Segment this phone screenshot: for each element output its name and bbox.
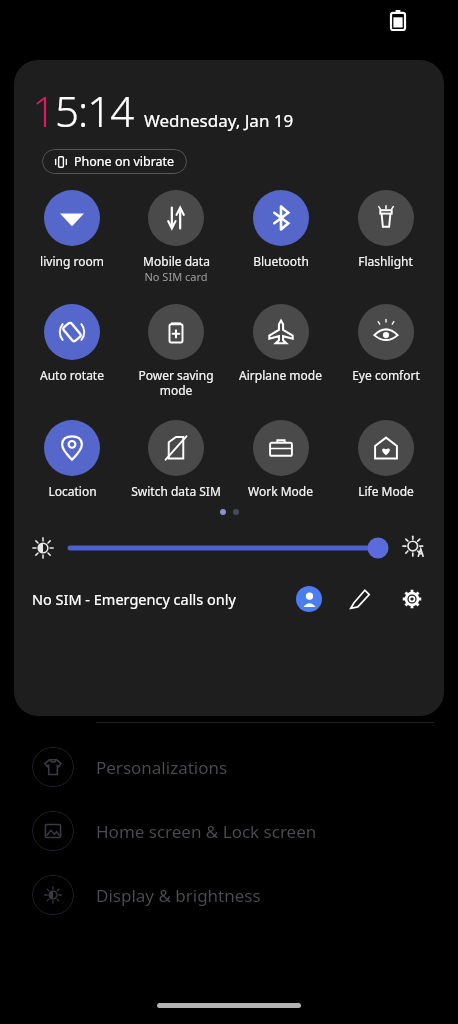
button[interactable]: User <box>296 586 322 612</box>
button[interactable]: Auto rotate <box>20 302 124 385</box>
button[interactable]: Personalizations <box>0 747 458 787</box>
staticText: No SIM card <box>144 269 208 284</box>
button[interactable] <box>68 535 388 561</box>
staticText: Switch data SIM <box>131 483 221 499</box>
staticText: Airplane mode <box>239 367 322 383</box>
button[interactable]: Display & brightness <box>0 875 458 915</box>
staticText: No SIM - Emergency calls only <box>32 589 236 609</box>
other: Lower brightness <box>32 537 54 559</box>
button[interactable]: Life Mode <box>333 418 438 501</box>
button[interactable]: Location <box>20 418 124 501</box>
staticText: Phone on vibrate <box>74 153 175 170</box>
staticText: Display & brightness <box>96 884 261 907</box>
button[interactable]: Home screen & Lock screen <box>0 811 458 851</box>
button[interactable]: Edit tiles <box>346 585 374 613</box>
button[interactable]: Switch data SIM <box>124 418 228 501</box>
other: Auto brightness <box>402 536 426 560</box>
staticText: Power saving mode <box>138 367 214 398</box>
staticText: Flashlight <box>358 253 413 269</box>
button[interactable]: Flashlight <box>333 188 438 271</box>
staticText: Personalizations <box>96 756 228 779</box>
button[interactable]: Eye comfort <box>333 302 438 385</box>
button[interactable]: Mobile data <box>124 188 228 286</box>
button[interactable]: Bluetooth <box>228 188 333 271</box>
staticText: Home screen & Lock screen <box>96 820 317 843</box>
staticText: Work Mode <box>248 483 313 499</box>
button[interactable]: Settings <box>398 585 426 613</box>
staticText: 15:14 <box>32 82 134 139</box>
staticText: Bluetooth <box>253 253 309 269</box>
staticText: Mobile data <box>143 253 210 269</box>
staticText: Auto rotate <box>40 367 104 383</box>
button[interactable]: Phone on vibrate <box>42 149 187 174</box>
staticText: Wednesday, Jan 19 <box>144 109 294 132</box>
button[interactable]: Work Mode <box>228 418 333 501</box>
button[interactable]: living room <box>20 188 124 271</box>
staticText: living room <box>40 253 104 269</box>
button[interactable]: Power saving mode <box>124 302 228 400</box>
staticText: Life Mode <box>358 483 414 499</box>
button[interactable]: Airplane mode <box>228 302 333 385</box>
staticText: Location <box>48 483 97 499</box>
staticText: Eye comfort <box>352 367 420 383</box>
